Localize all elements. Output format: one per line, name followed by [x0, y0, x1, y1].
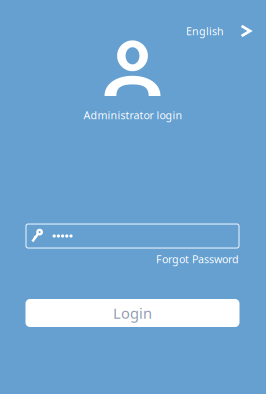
button[interactable]: Login	[25, 299, 239, 327]
staticText: English	[186, 24, 224, 38]
button[interactable]: Forgot Password	[154, 249, 241, 269]
button[interactable]: English	[178, 18, 260, 44]
button[interactable]: Password	[26, 224, 239, 248]
staticText: Administrator login	[83, 108, 182, 122]
staticText: Forgot Password	[156, 252, 239, 266]
staticText: Login	[113, 303, 152, 323]
